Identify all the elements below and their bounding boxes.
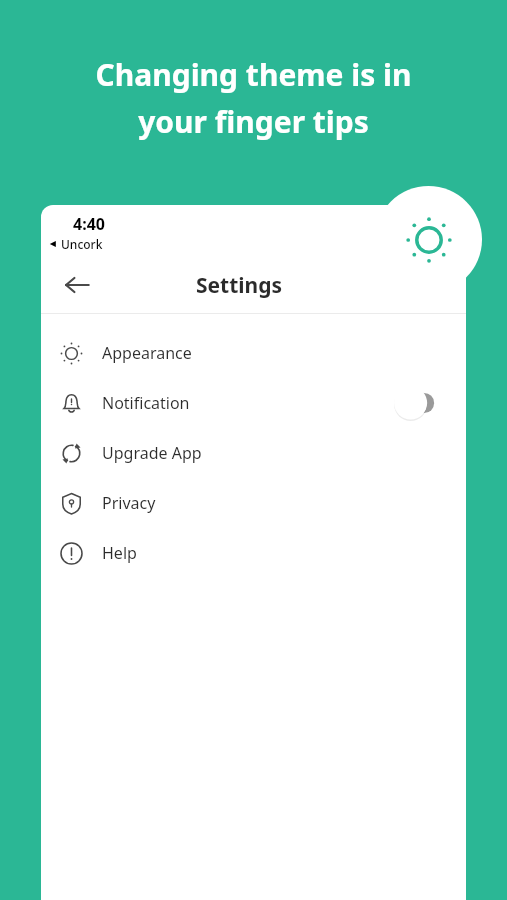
button[interactable]: Notification (41, 378, 466, 428)
staticText: Privacy (102, 492, 156, 514)
staticText: 4:40 (73, 213, 105, 235)
staticText: Settings (196, 271, 283, 300)
button[interactable]: Appearance (41, 328, 466, 378)
staticText: Appearance (102, 342, 192, 364)
button[interactable]: Notification toggle (390, 389, 438, 417)
staticText: Notification (102, 392, 190, 414)
staticText: Upgrade App (102, 442, 202, 464)
staticText: your finger tips (138, 101, 369, 142)
button[interactable]: Brightness (375, 186, 482, 293)
button[interactable]: Privacy (41, 478, 466, 528)
button[interactable]: Upgrade App (41, 428, 466, 478)
staticText: Help (102, 542, 137, 564)
button[interactable]: Help (41, 528, 466, 578)
staticText: Uncork (61, 236, 103, 252)
staticText: Changing theme is in (95, 54, 412, 95)
button[interactable]: Back (55, 263, 99, 307)
